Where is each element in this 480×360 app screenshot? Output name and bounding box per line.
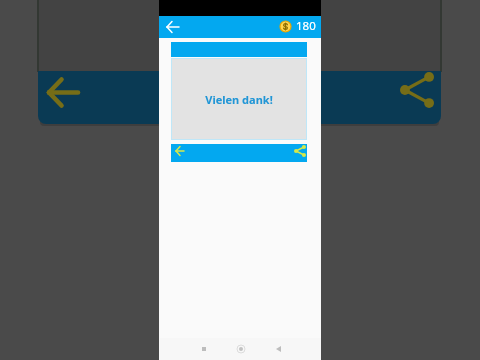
button[interactable]: Back [162,17,182,37]
button[interactable]: 180 [280,18,316,34]
button[interactable]: Back [269,340,287,358]
button[interactable]: Home [232,340,250,358]
other: Back [48,79,78,106]
staticText: 180 [296,18,316,34]
button[interactable]: Back [38,71,441,124]
staticText: Vielen dank! [205,92,273,107]
other: Share [400,72,434,108]
button[interactable]: Share [292,143,308,159]
button[interactable]: Back [171,143,187,159]
button[interactable]: Recents [195,340,213,358]
